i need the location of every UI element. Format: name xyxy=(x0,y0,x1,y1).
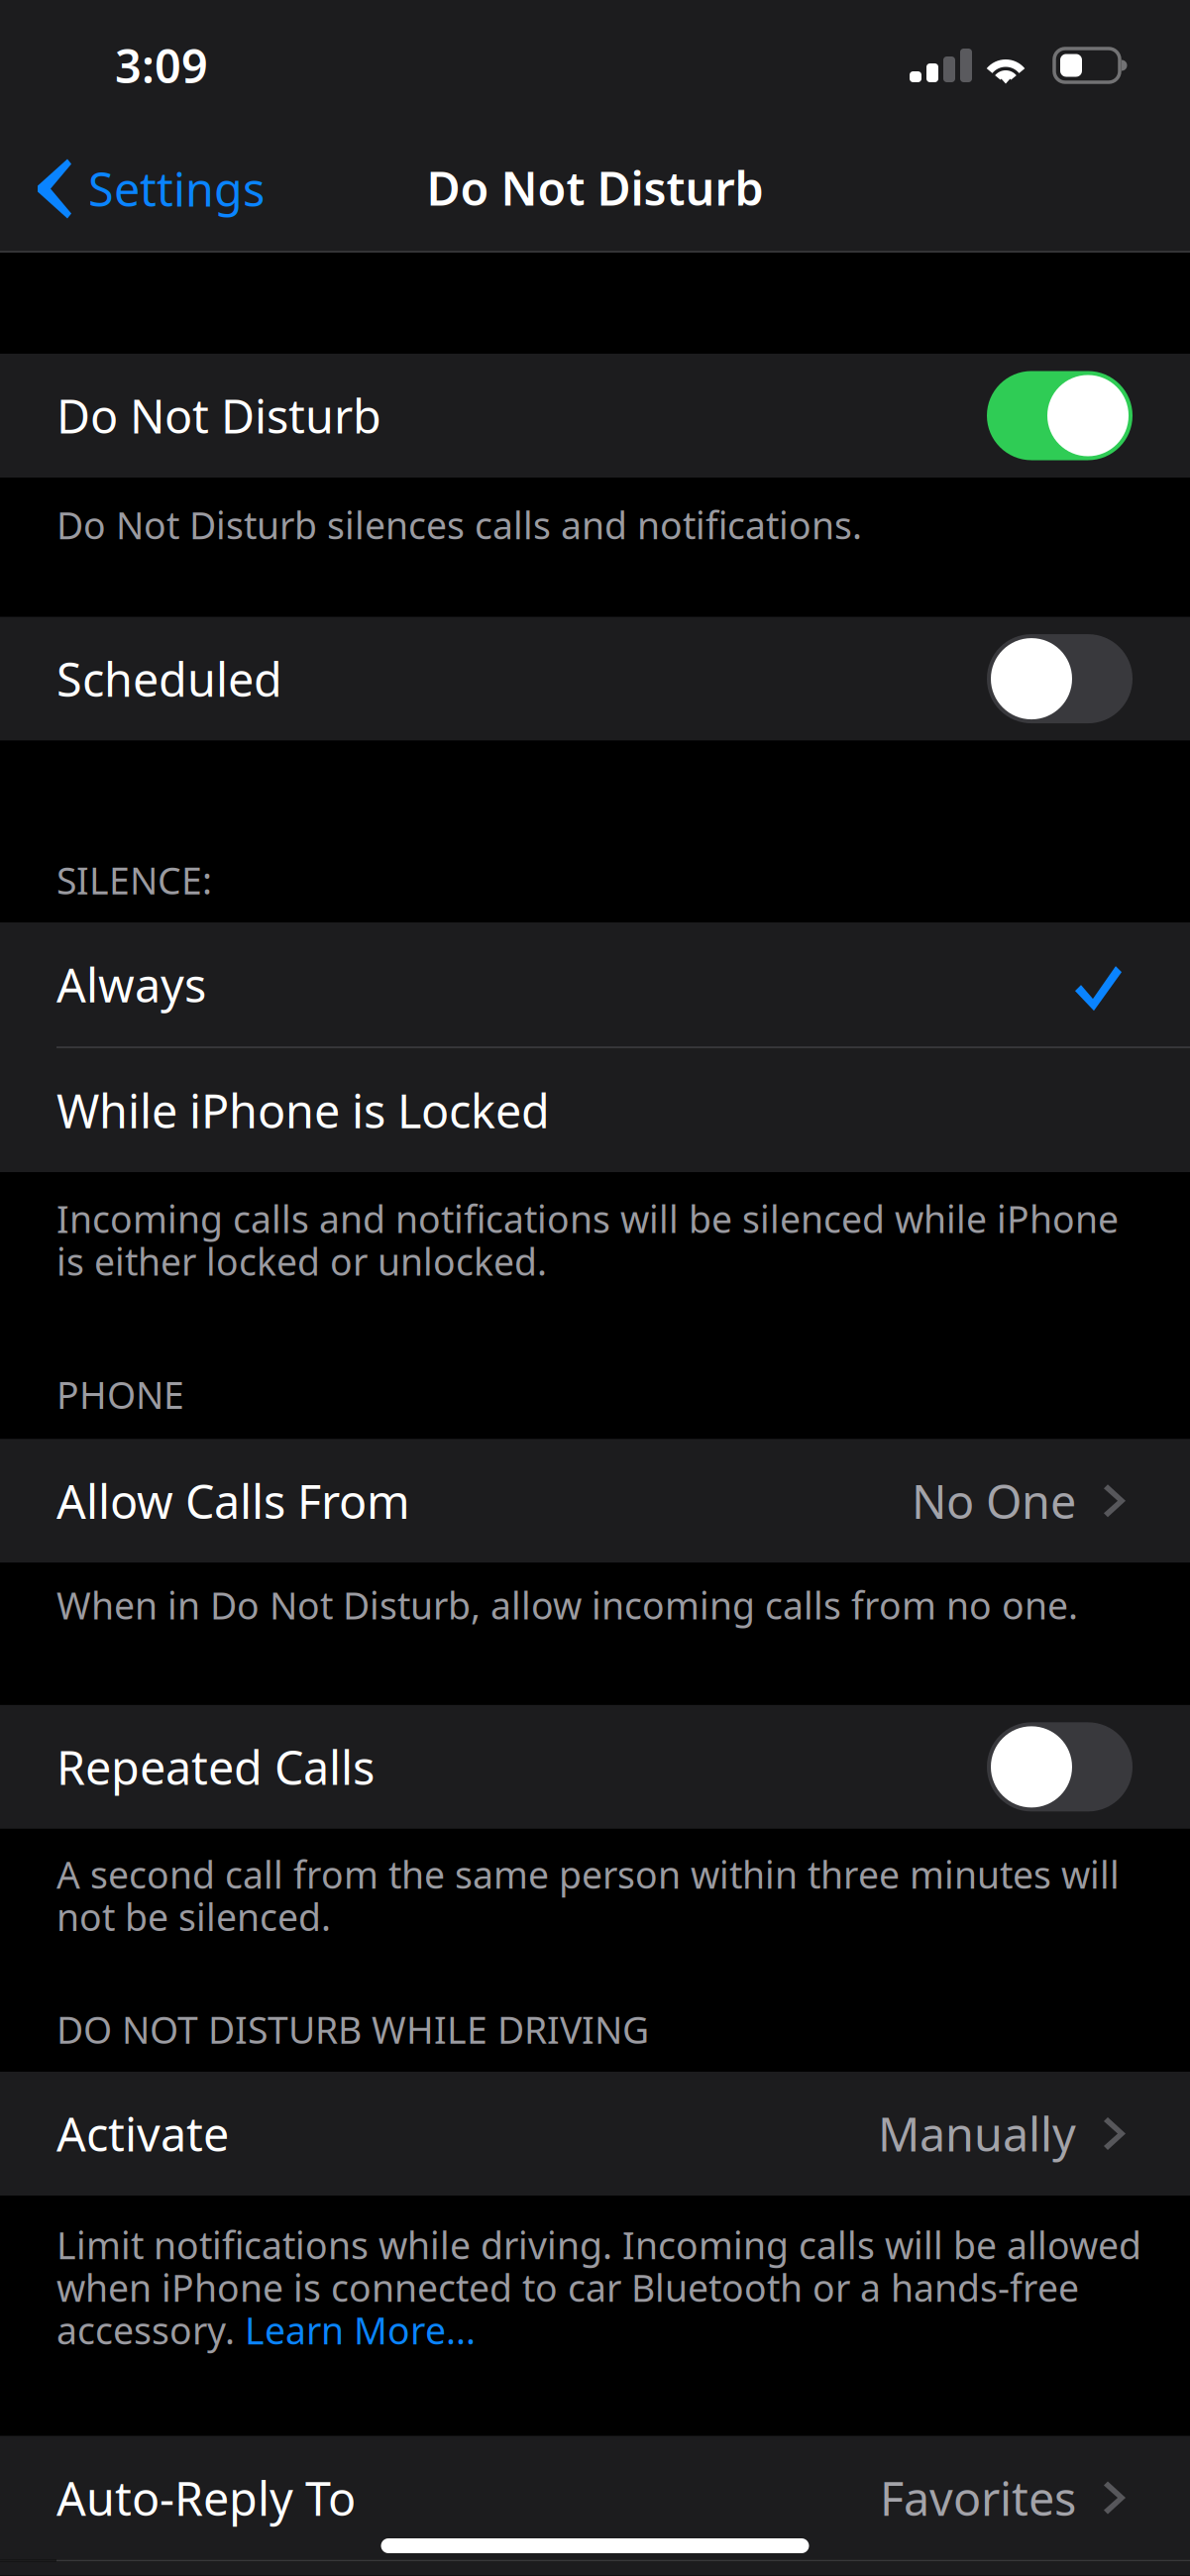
button[interactable]: Allow Calls From xyxy=(0,1439,1190,1563)
staticText: Incoming calls and notifications will be… xyxy=(56,1194,1119,1243)
staticText: Settings xyxy=(88,158,265,219)
button[interactable]: Repeated Calls xyxy=(0,1705,1190,1829)
staticText: DO NOT DISTURB WHILE DRIVING xyxy=(56,2005,649,2054)
staticText: Do Not Disturb xyxy=(56,385,381,446)
staticText: Repeated Calls xyxy=(56,1736,375,1798)
staticText: SILENCE: xyxy=(56,856,212,905)
staticText: is either locked or unlocked. xyxy=(56,1237,547,1286)
staticText: Allow Calls From xyxy=(56,1470,410,1532)
staticText: accessory. xyxy=(56,2305,245,2355)
button[interactable]: Do Not Disturb xyxy=(0,354,1190,478)
staticText: Manually xyxy=(878,2103,1076,2164)
staticText: Learn More... xyxy=(245,2305,476,2355)
staticText: Favorites xyxy=(880,2467,1076,2528)
button[interactable]: Learn More... xyxy=(245,2305,476,2355)
staticText: Do Not Disturb xyxy=(427,157,763,218)
staticText: Auto-Reply To xyxy=(56,2467,356,2528)
staticText: When in Do Not Disturb, allow incoming c… xyxy=(56,1581,1078,1630)
staticText: not be silenced. xyxy=(56,1892,331,1941)
button[interactable]: Back to Settings xyxy=(0,136,284,247)
button[interactable]: Scheduled xyxy=(0,617,1190,741)
staticText: Scheduled xyxy=(56,648,282,709)
staticText: While iPhone is Locked xyxy=(56,1080,550,1141)
staticText: Activate xyxy=(56,2103,229,2164)
staticText: PHONE xyxy=(56,1370,184,1419)
button[interactable]: While iPhone is Locked xyxy=(0,1048,1190,1172)
staticText: No One xyxy=(912,1470,1076,1532)
staticText: Limit notifications while driving. Incom… xyxy=(56,2220,1141,2269)
staticText: A second call from the same person withi… xyxy=(56,1850,1120,1899)
button[interactable]: Auto-Reply To xyxy=(0,2436,1190,2560)
staticText: Always xyxy=(56,954,206,1015)
staticText: Do Not Disturb silences calls and notifi… xyxy=(56,500,862,549)
staticText: 3:09 xyxy=(115,35,208,96)
button[interactable]: Activate xyxy=(0,2072,1190,2196)
staticText: when iPhone is connected to car Bluetoot… xyxy=(56,2263,1079,2312)
button[interactable]: Always xyxy=(0,923,1190,1046)
